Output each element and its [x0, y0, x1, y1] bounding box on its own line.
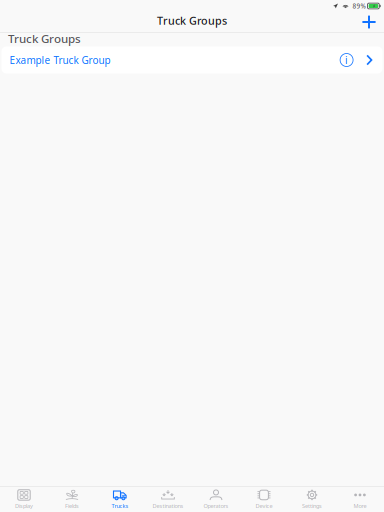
button[interactable]: More — [336, 487, 384, 512]
staticText: More — [353, 502, 366, 509]
button[interactable]: Operators — [192, 487, 240, 512]
staticText: Destinations — [152, 502, 183, 509]
staticText: Truck Groups — [8, 31, 81, 46]
staticText: Example Truck Group — [9, 53, 110, 67]
staticText: Truck Groups — [157, 13, 227, 28]
staticText: Display — [15, 502, 33, 509]
button[interactable]: Display — [0, 487, 48, 512]
button[interactable]: Device — [240, 487, 288, 512]
button[interactable]: Add truck group — [358, 12, 380, 32]
staticText: Device — [255, 502, 272, 509]
staticText: Trucks — [111, 502, 128, 509]
staticText: i — [345, 53, 348, 67]
button[interactable]: Trucks — [96, 487, 144, 512]
button[interactable]: Example Truck Group — [1, 46, 382, 73]
staticText: Fields — [65, 502, 79, 509]
staticText: 89% — [352, 2, 365, 10]
button[interactable]: Destinations — [144, 487, 192, 512]
button[interactable]: Settings — [288, 487, 336, 512]
staticText: Operators — [203, 502, 228, 509]
staticText: Settings — [302, 502, 322, 509]
button[interactable]: Fields — [48, 487, 96, 512]
